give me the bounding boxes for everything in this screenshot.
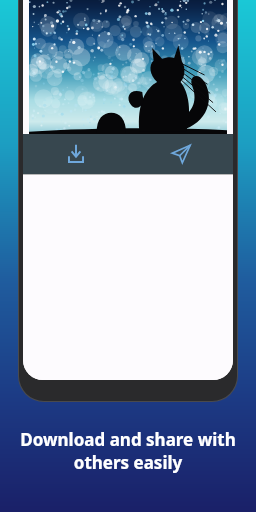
staticText: Download and share with others easily: [20, 428, 236, 474]
button[interactable]: Share: [128, 134, 233, 174]
button[interactable]: Download: [23, 134, 128, 174]
